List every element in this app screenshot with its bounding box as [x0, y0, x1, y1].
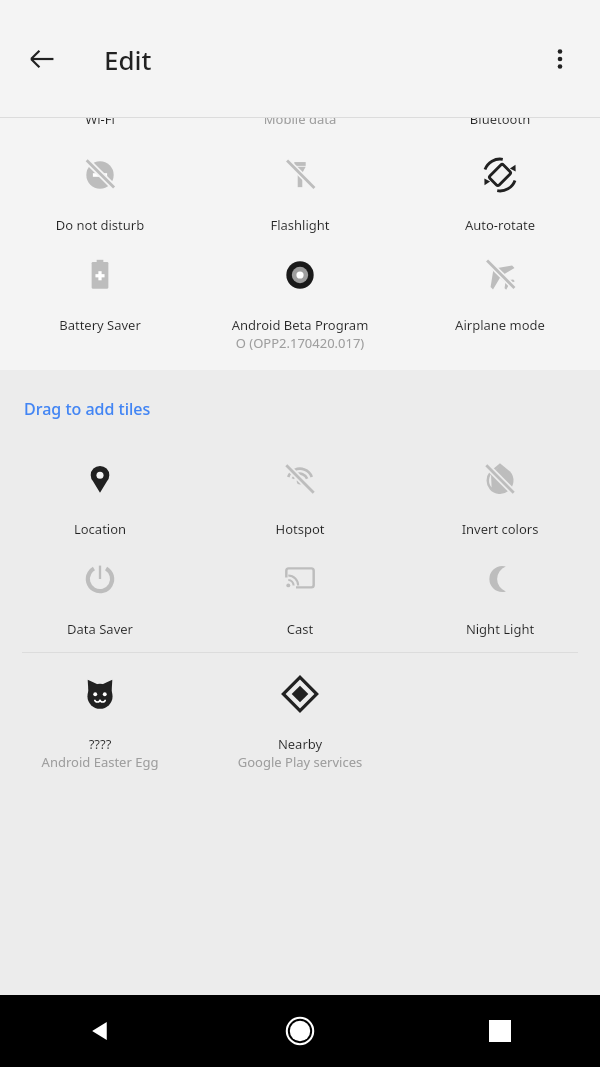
- staticText: Cast: [204, 620, 396, 638]
- staticText: Mobile data: [200, 118, 400, 126]
- staticText: O (OPP2.170420.017): [204, 334, 396, 352]
- button[interactable]: ????: [0, 653, 200, 771]
- staticText: Edit: [104, 42, 152, 77]
- button[interactable]: Home: [200, 995, 400, 1067]
- button[interactable]: Hotspot: [200, 438, 400, 538]
- staticText: Hotspot: [204, 520, 396, 538]
- staticText: Drag to add tiles: [24, 398, 151, 420]
- staticText: Location: [4, 520, 196, 538]
- staticText: Data Saver: [4, 620, 196, 638]
- button[interactable]: Flashlight: [200, 134, 400, 234]
- staticText: Bluetooth: [400, 118, 600, 126]
- button[interactable]: Back: [0, 995, 200, 1067]
- button[interactable]: Android Beta Program: [200, 234, 400, 352]
- button[interactable]: Do not disturb: [0, 134, 200, 234]
- button[interactable]: Back: [14, 31, 70, 87]
- staticText: Airplane mode: [404, 316, 596, 334]
- staticText: Battery Saver: [4, 316, 196, 334]
- button[interactable]: Location: [0, 438, 200, 538]
- staticText: Wi-Fi: [0, 118, 200, 126]
- staticText: Night Light: [404, 620, 596, 638]
- button[interactable]: Airplane mode: [400, 234, 600, 334]
- button[interactable]: Data Saver: [0, 538, 200, 638]
- staticText: Nearby: [204, 735, 396, 753]
- staticText: Google Play services: [204, 753, 396, 771]
- button[interactable]: More options: [532, 31, 588, 87]
- staticText: Android Beta Program: [204, 316, 396, 334]
- button[interactable]: Auto-rotate: [400, 134, 600, 234]
- button[interactable]: Invert colors: [400, 438, 600, 538]
- button[interactable]: Night Light: [400, 538, 600, 638]
- button[interactable]: Battery Saver: [0, 234, 200, 334]
- staticText: Android Easter Egg: [4, 753, 196, 771]
- staticText: Flashlight: [204, 216, 396, 234]
- button[interactable]: Cast: [200, 538, 400, 638]
- button[interactable]: Nearby: [200, 653, 400, 771]
- staticText: Do not disturb: [4, 216, 196, 234]
- staticText: Invert colors: [404, 520, 596, 538]
- button[interactable]: Recent apps: [400, 995, 600, 1067]
- staticText: ????: [4, 735, 196, 753]
- staticText: Auto-rotate: [404, 216, 596, 234]
